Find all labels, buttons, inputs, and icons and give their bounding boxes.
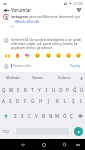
button[interactable]: Emoji [74, 51, 82, 59]
button[interactable]: K [53, 95, 61, 107]
button[interactable]: F [21, 95, 29, 107]
button[interactable]: W [8, 84, 15, 95]
button[interactable]: Ğ [71, 84, 78, 95]
button[interactable]: C [26, 107, 33, 124]
button[interactable]: I [77, 95, 85, 107]
staticText: K [56, 98, 59, 104]
button[interactable]: mehmet34 Sonunda beklediğimiz o an geldi… [0, 29, 85, 50]
button[interactable]: H [37, 95, 45, 107]
staticText: Yorumlar [11, 7, 32, 13]
button[interactable]: Q [0, 84, 8, 95]
staticText: P [66, 87, 69, 93]
button[interactable]: Ç [68, 107, 75, 124]
button[interactable]: Emoji [23, 51, 31, 59]
button[interactable]: B [40, 107, 47, 124]
staticText: 21:05 [74, 1, 83, 6]
button[interactable]: Y [36, 84, 43, 95]
staticText: , [13, 129, 15, 134]
button[interactable]: I [43, 84, 50, 95]
button[interactable]: P [64, 84, 71, 95]
button[interactable]: Kullanıcı [51, 72, 77, 84]
staticText: G [31, 98, 35, 104]
staticText: Kullanıcı [58, 76, 71, 80]
button[interactable]: Tamam [25, 72, 51, 84]
button[interactable]: D [14, 95, 21, 107]
button[interactable]: Emoji [44, 51, 52, 59]
staticText: Ç [70, 113, 73, 119]
staticText: O [59, 87, 63, 93]
staticText: instagram [11, 14, 28, 19]
staticText: W [9, 87, 14, 93]
button[interactable]: Ö [61, 107, 68, 124]
button[interactable]: Send [74, 127, 83, 136]
button[interactable]: Paylaş [69, 61, 82, 70]
staticText: . [71, 129, 73, 134]
button[interactable]: Ş [69, 95, 77, 107]
staticText: M [55, 113, 60, 119]
staticText: Q [2, 87, 6, 93]
staticText: #Reels #Yenilik [15, 19, 40, 24]
button[interactable]: Emoji [64, 51, 72, 59]
button[interactable]: G [29, 95, 37, 107]
staticText: N [49, 113, 53, 119]
staticText: D [16, 98, 20, 104]
button[interactable]: Reply [11, 25, 14, 28]
staticText: I [46, 87, 48, 93]
button[interactable]: Emoji [3, 51, 11, 59]
staticText: R [24, 87, 27, 93]
button[interactable]: O [57, 84, 64, 95]
button[interactable]: E [15, 84, 22, 95]
button[interactable]: Merhaba [0, 72, 25, 84]
staticText: E [17, 87, 20, 93]
button[interactable]: Z [11, 107, 19, 124]
button[interactable]: Emoji [54, 51, 62, 59]
button[interactable]: Voice input [77, 72, 85, 84]
staticText: I [80, 98, 82, 104]
staticText: B [42, 113, 45, 119]
button[interactable]: N [47, 107, 54, 124]
staticText: C [28, 113, 31, 119]
button[interactable]: Backspace [75, 107, 85, 124]
button[interactable]: M [54, 107, 61, 124]
button[interactable]: T [29, 84, 36, 95]
button[interactable]: U [50, 84, 57, 95]
button[interactable]: Emoji [33, 51, 41, 59]
staticText: Merhaba [6, 76, 20, 80]
button[interactable]: Ü [78, 84, 85, 95]
button[interactable]: R [22, 84, 29, 95]
staticText: Y [38, 87, 41, 93]
staticText: · · [11, 19, 15, 24]
staticText: L [64, 98, 67, 104]
button[interactable]: instagram [0, 13, 85, 28]
staticText: Tamam [32, 76, 44, 80]
button[interactable]: Emoji [13, 51, 21, 59]
button[interactable]: J [45, 95, 53, 107]
button[interactable]: Back [3, 7, 9, 13]
button[interactable]: Shift [0, 107, 11, 124]
staticText: Yorum ekle… [13, 63, 34, 68]
button[interactable]: Recents [60, 140, 69, 149]
staticText: J [48, 98, 50, 104]
staticText: ?123 [2, 130, 9, 134]
staticText: V [35, 113, 38, 119]
staticText: Ö [63, 113, 67, 119]
staticText: F [24, 98, 27, 104]
staticText: Ş [72, 98, 75, 104]
staticText: A [2, 98, 5, 104]
button[interactable]: A [0, 95, 7, 107]
button[interactable]: V [33, 107, 40, 124]
button[interactable]: X [19, 107, 26, 124]
button[interactable]: Home [39, 140, 48, 149]
button[interactable]: Change keyboard [73, 140, 82, 149]
button[interactable]: S [7, 95, 14, 107]
staticText: Paylaş [70, 63, 81, 68]
button[interactable]: ?123 [0, 124, 11, 139]
button[interactable]: Comma [11, 124, 16, 139]
button[interactable]: Share [76, 7, 82, 13]
button[interactable]: Hide keyboard [18, 140, 27, 149]
button[interactable]: Yorum ekle… [11, 59, 69, 72]
button[interactable]: L [61, 95, 69, 107]
staticText: X [21, 113, 24, 119]
